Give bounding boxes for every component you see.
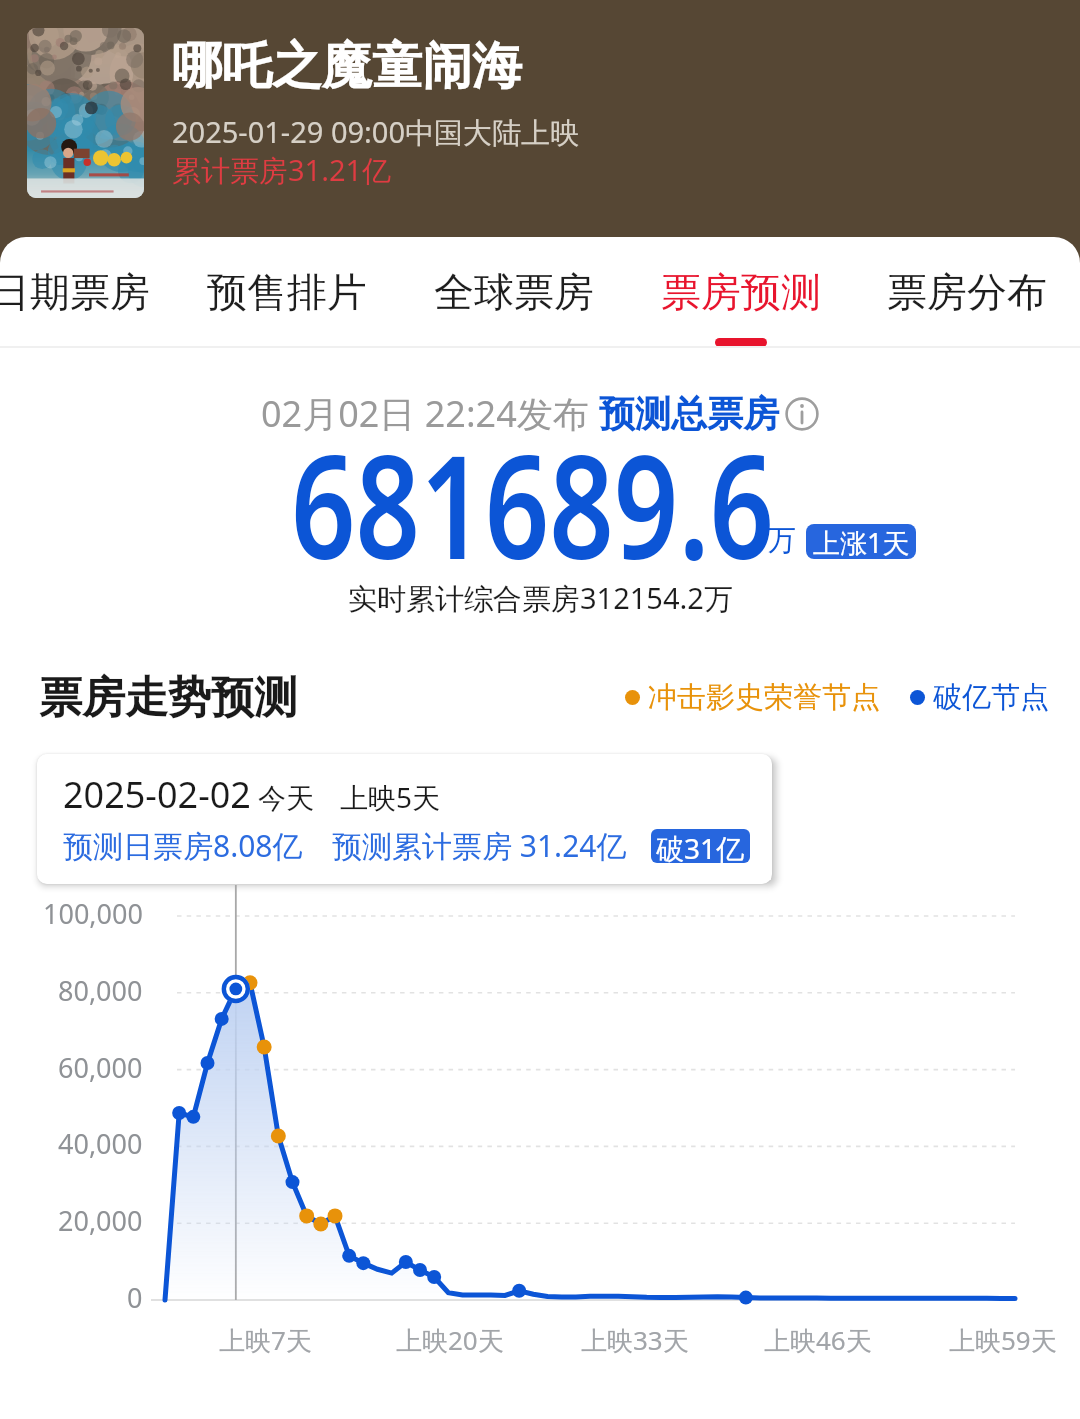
staticText: 上映33天 [581, 1322, 689, 1358]
staticText: 2025-01-29 09:00中国大陆上映 [172, 112, 580, 152]
staticText: 预售排片 [207, 267, 367, 317]
staticText: 预测累计票房 31.24亿 [332, 825, 627, 866]
button[interactable]: 票房预测 [636, 248, 846, 336]
staticText: 100,000 [43, 895, 143, 932]
staticText: 票房预测 [661, 267, 821, 317]
staticText: 万 [767, 522, 796, 559]
button[interactable]: 电影海报 [27, 28, 144, 198]
staticText: 上涨1天 [813, 524, 910, 559]
staticText: 实时累计综合票房312154.2万 [348, 578, 733, 618]
button[interactable]: 说明 [785, 397, 819, 431]
staticText: 681689.6 [291, 407, 774, 600]
button[interactable]: 全球票房 [409, 248, 619, 336]
staticText: 票房走势预测 [39, 671, 297, 725]
staticText: 上映5天 [340, 778, 441, 816]
button[interactable]: 2025-02-02 [37, 754, 772, 884]
staticText: 上映20天 [396, 1322, 504, 1358]
button[interactable]: 上涨1天 [806, 524, 916, 559]
staticText: 20,000 [58, 1202, 143, 1239]
staticText: 0 [127, 1279, 143, 1316]
staticText: 上映7天 [219, 1322, 312, 1358]
staticText: 票房分布 [887, 267, 1047, 317]
staticText: 全球票房 [434, 267, 594, 317]
staticText: 破亿节点 [933, 679, 1049, 716]
staticText: 冲击影史荣誉节点 [648, 679, 880, 716]
button[interactable]: 冲击影史荣誉节点 [625, 679, 1049, 716]
staticText: 破31亿 [656, 829, 745, 863]
staticText: 40,000 [58, 1125, 143, 1162]
button[interactable]: 票房分布 [862, 248, 1072, 336]
button[interactable]: 日期票房 [0, 248, 175, 336]
staticText: 上映59天 [949, 1322, 1057, 1358]
staticText: 2025-02-02 [63, 770, 251, 819]
staticText: 哪吒之魔童闹海 [172, 35, 522, 98]
button[interactable]: 预售排片 [182, 248, 392, 336]
staticText: 60,000 [58, 1049, 143, 1086]
staticText: 预测日票房8.08亿 [63, 825, 303, 866]
button[interactable]: 哪吒之魔童闹海 [165, 28, 1055, 198]
staticText: 今天 [258, 781, 314, 816]
staticText: 累计票房31.21亿 [172, 150, 392, 190]
staticText: 日期票房 [0, 267, 150, 317]
staticText: 80,000 [58, 972, 143, 1009]
staticText: 02月02日 22:24发布 [261, 389, 599, 438]
staticText: 预测总票房 [599, 391, 779, 436]
staticText: 上映46天 [764, 1322, 872, 1358]
